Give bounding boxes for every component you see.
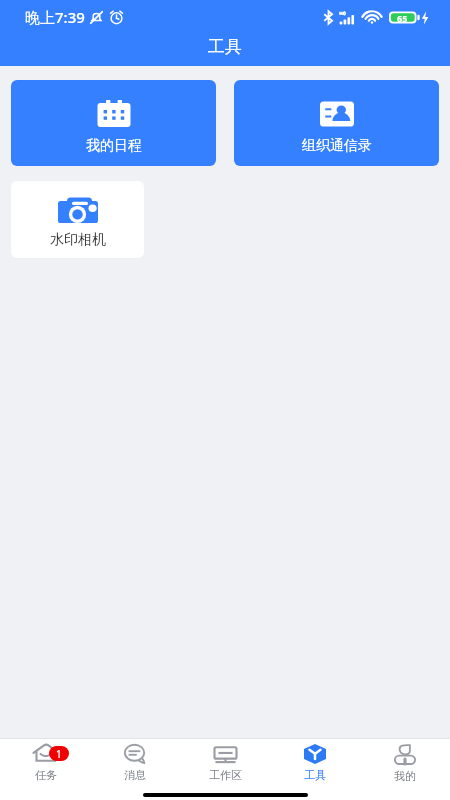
button[interactable]: 我的	[360, 739, 450, 783]
staticText: 水印相机	[50, 231, 106, 249]
staticText: 1	[56, 747, 62, 761]
staticText: 组织通信录	[302, 137, 372, 155]
staticText: 工作区	[209, 768, 242, 782]
button[interactable]: 工作区	[180, 739, 270, 783]
staticText: 65	[397, 12, 408, 24]
staticText: 消息	[124, 768, 146, 782]
staticText: 晚上7:39	[25, 7, 85, 27]
button[interactable]: 1	[0, 739, 90, 783]
button[interactable]: 水印相机	[11, 181, 144, 258]
button[interactable]: 组织通信录	[234, 80, 439, 166]
staticText: 我的	[394, 769, 416, 783]
staticText: 工具	[208, 36, 242, 57]
button[interactable]: 工具	[270, 739, 360, 783]
button[interactable]: 消息	[90, 739, 180, 783]
staticText: 我的日程	[86, 137, 142, 155]
staticText: 任务	[35, 768, 57, 782]
staticText: 工具	[304, 768, 326, 782]
button[interactable]: 我的日程	[11, 80, 216, 166]
